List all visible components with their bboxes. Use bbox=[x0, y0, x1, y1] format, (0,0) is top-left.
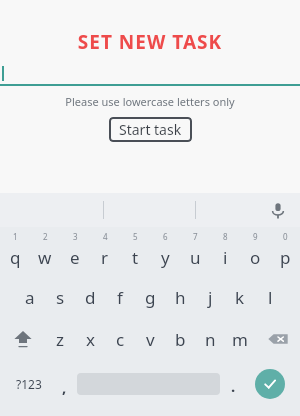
button[interactable]: c bbox=[105, 318, 135, 360]
button[interactable]: 2 bbox=[30, 230, 60, 276]
button[interactable]: ?123 bbox=[6, 360, 51, 408]
button[interactable]: m bbox=[225, 318, 255, 360]
staticText: a bbox=[25, 286, 35, 309]
staticText: ?123 bbox=[16, 376, 42, 392]
staticText: i bbox=[223, 246, 228, 269]
staticText: f bbox=[117, 286, 123, 309]
button[interactable]: , bbox=[51, 360, 77, 408]
button[interactable]: 4 bbox=[90, 230, 120, 276]
staticText: n bbox=[205, 328, 216, 351]
button[interactable]: 3 bbox=[60, 230, 90, 276]
staticText: 4 bbox=[103, 231, 108, 242]
staticText: w bbox=[38, 246, 52, 269]
staticText: z bbox=[56, 328, 64, 351]
button[interactable] bbox=[0, 64, 300, 88]
staticText: p bbox=[280, 246, 291, 269]
staticText: o bbox=[250, 246, 261, 269]
button[interactable]: Start task bbox=[109, 117, 192, 142]
staticText: , bbox=[62, 377, 67, 397]
staticText: 7 bbox=[193, 231, 198, 242]
button[interactable]: Done bbox=[255, 369, 285, 399]
staticText: d bbox=[85, 286, 96, 309]
staticText: s bbox=[56, 286, 65, 309]
button[interactable]: . bbox=[220, 360, 246, 408]
button[interactable]: j bbox=[195, 276, 225, 318]
staticText: 0 bbox=[283, 231, 288, 242]
staticText: 8 bbox=[223, 231, 228, 242]
button[interactable]: 0 bbox=[270, 230, 300, 276]
button[interactable]: 9 bbox=[240, 230, 270, 276]
staticText: 5 bbox=[133, 231, 138, 242]
button[interactable]: n bbox=[195, 318, 225, 360]
staticText: k bbox=[235, 286, 245, 309]
button[interactable]: f bbox=[105, 276, 135, 318]
staticText: v bbox=[146, 328, 155, 351]
button[interactable]: z bbox=[45, 318, 75, 360]
button[interactable]: d bbox=[75, 276, 105, 318]
button[interactable]: s bbox=[45, 276, 75, 318]
button[interactable]: l bbox=[255, 276, 285, 318]
staticText: h bbox=[175, 286, 186, 309]
staticText: Please use lowercase letters only bbox=[0, 94, 300, 109]
staticText: 3 bbox=[73, 231, 78, 242]
staticText: x bbox=[86, 328, 95, 351]
staticText: . bbox=[231, 376, 236, 396]
button[interactable]: Backspace bbox=[255, 318, 300, 360]
staticText: 2 bbox=[43, 231, 48, 242]
button[interactable]: a bbox=[15, 276, 45, 318]
staticText: l bbox=[268, 286, 273, 309]
staticText: 9 bbox=[253, 231, 258, 242]
staticText: c bbox=[116, 328, 125, 351]
staticText: t bbox=[132, 246, 139, 269]
staticText: y bbox=[161, 246, 170, 269]
button[interactable]: 7 bbox=[180, 230, 210, 276]
button[interactable]: k bbox=[225, 276, 255, 318]
button[interactable]: 6 bbox=[150, 230, 180, 276]
button[interactable]: x bbox=[75, 318, 105, 360]
button[interactable]: Voice input bbox=[266, 198, 290, 222]
staticText: u bbox=[190, 246, 201, 269]
staticText: e bbox=[70, 246, 80, 269]
button[interactable]: 1 bbox=[0, 230, 30, 276]
staticText: 6 bbox=[163, 231, 168, 242]
staticText: q bbox=[10, 246, 21, 269]
staticText: j bbox=[208, 286, 213, 309]
button[interactable]: 5 bbox=[120, 230, 150, 276]
staticText: m bbox=[232, 328, 248, 351]
button[interactable]: h bbox=[165, 276, 195, 318]
staticText: g bbox=[145, 286, 156, 309]
staticText: 1 bbox=[13, 231, 18, 242]
staticText: b bbox=[175, 328, 186, 351]
button[interactable]: 8 bbox=[210, 230, 240, 276]
staticText: r bbox=[101, 246, 109, 269]
button[interactable]: g bbox=[135, 276, 165, 318]
staticText: SET NEW TASK bbox=[0, 29, 300, 55]
button[interactable]: b bbox=[165, 318, 195, 360]
button[interactable]: Shift bbox=[0, 318, 45, 360]
staticText: Start task bbox=[119, 120, 182, 139]
button[interactable]: v bbox=[135, 318, 165, 360]
